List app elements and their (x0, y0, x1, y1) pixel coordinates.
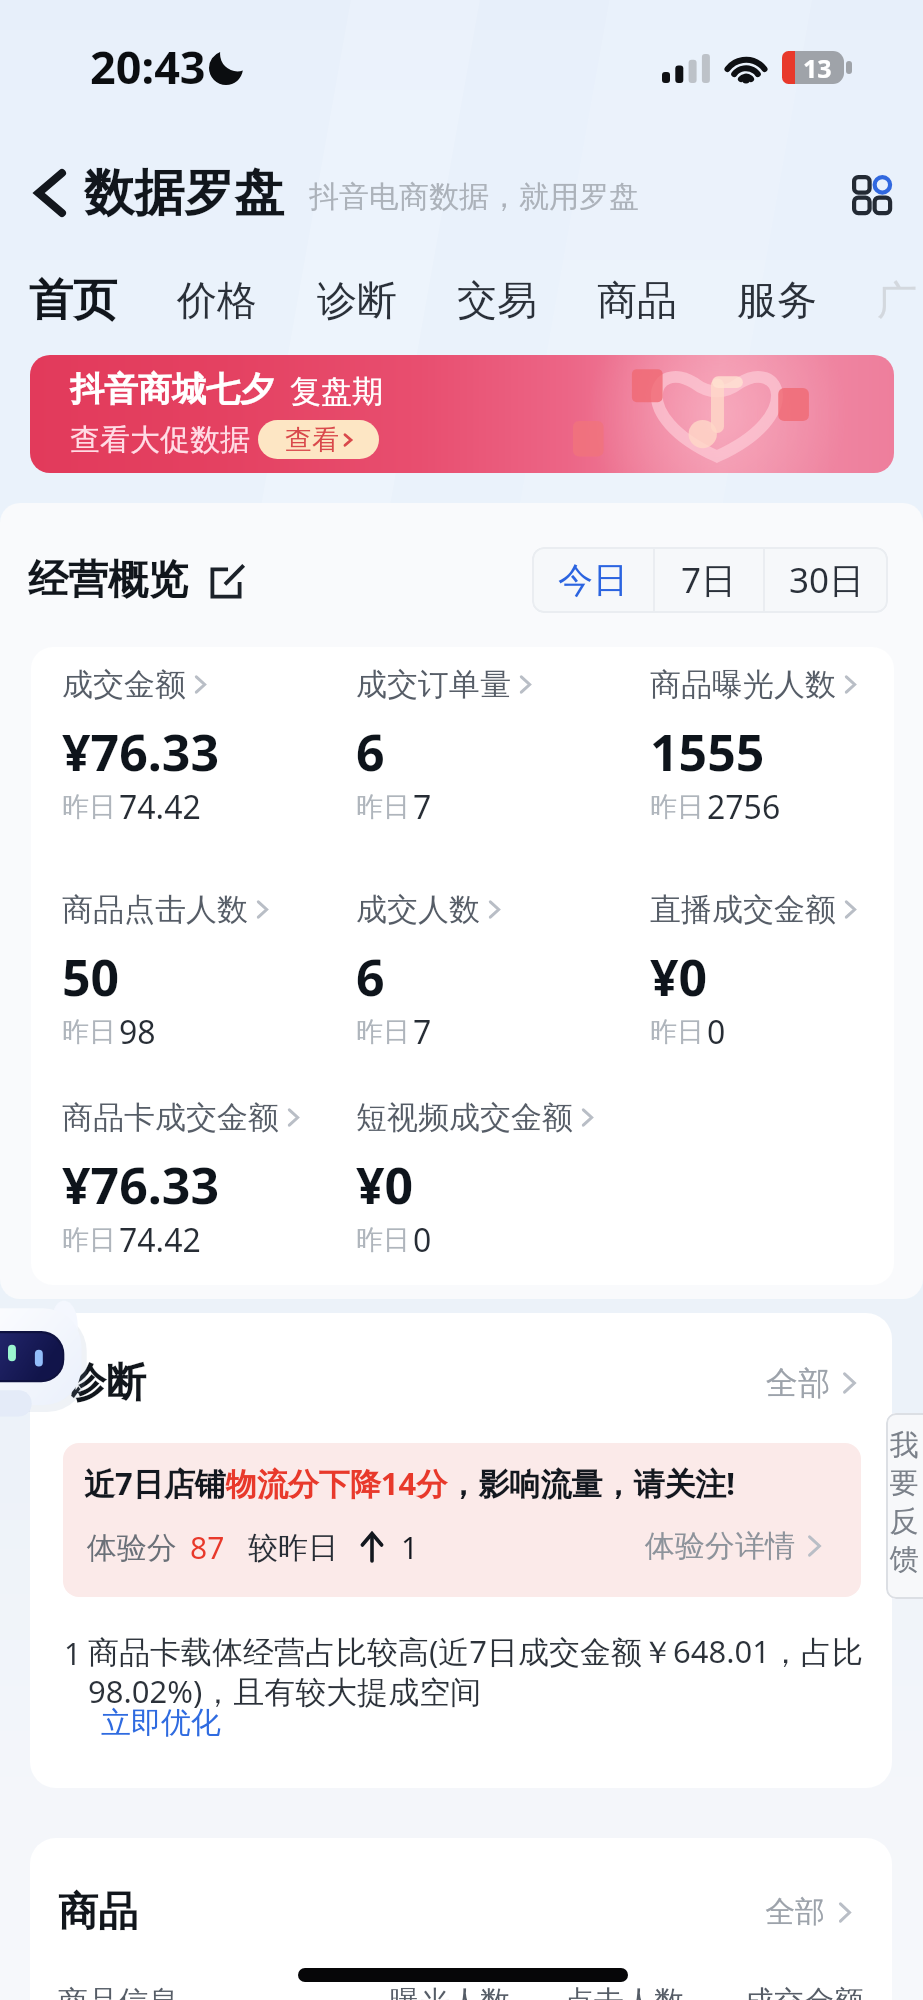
button[interactable]: 成交人数 (356, 890, 500, 929)
staticText: 今日 (558, 558, 628, 602)
staticText: ¥76.33 (62, 718, 220, 786)
staticText: 体验分 (87, 1529, 177, 1567)
staticText: 87 (190, 1527, 225, 1568)
staticText: 点击人数 (564, 1983, 684, 2000)
staticText: 1 (64, 1633, 82, 1674)
button[interactable]: Back (20, 158, 80, 228)
button[interactable]: 全部 (766, 1363, 856, 1403)
staticText: 成交订单量 (356, 665, 511, 704)
staticText: 我要反馈 (889, 1427, 919, 1578)
staticText: 成交金额 (62, 665, 186, 704)
staticText: 诊断 (66, 1357, 146, 1407)
staticText: 经营概览 (28, 554, 188, 604)
staticText: 查看 (285, 423, 339, 457)
staticText: 商品 (58, 1886, 138, 1936)
button[interactable]: 成交金额 (62, 665, 206, 704)
staticText: 7 (413, 1010, 432, 1054)
staticText: 昨日 (62, 1223, 116, 1257)
staticText: ¥0 (650, 943, 708, 1011)
button[interactable]: 诊断 (317, 275, 397, 325)
staticText: 1 (401, 1527, 419, 1568)
staticText: 全部 (766, 1363, 830, 1403)
button[interactable]: 服务 (737, 275, 817, 325)
staticText: 商品点击人数 (62, 890, 248, 929)
staticText: 商品曝光人数 (650, 665, 836, 704)
button[interactable]: 价格 (177, 275, 257, 325)
button[interactable]: 商品曝光人数 (650, 665, 856, 704)
staticText: 7日 (681, 556, 737, 604)
staticText: 商品 (597, 275, 677, 325)
button[interactable]: 全部 (765, 1893, 851, 1931)
button[interactable]: 首页 (29, 273, 117, 328)
button[interactable]: 30日 (765, 547, 888, 613)
staticText: 0 (707, 1010, 726, 1054)
staticText: 6 (356, 718, 385, 786)
staticText: 昨日 (356, 1223, 410, 1257)
staticText: 6 (356, 943, 385, 1011)
staticText: 曝光人数 (390, 1983, 510, 2000)
staticText: 立即优化 (101, 1704, 221, 1742)
staticText: 74.42 (119, 785, 201, 829)
button[interactable]: 商品 (597, 275, 677, 325)
staticText: 价格 (177, 275, 257, 325)
staticText: 诊断 (317, 275, 397, 325)
button[interactable]: 立即优化 (101, 1704, 221, 1742)
staticText: 服务 (737, 275, 817, 325)
staticText: 查看大促数据 (70, 421, 250, 459)
button[interactable]: 成交订单量 (356, 665, 531, 704)
button[interactable]: 直播成交金额 (650, 890, 856, 929)
staticText: 2756 (707, 785, 781, 829)
staticText: 昨日 (62, 790, 116, 824)
staticText: ¥0 (356, 1151, 414, 1219)
staticText: 直播成交金额 (650, 890, 836, 929)
button[interactable]: 交易 (457, 275, 537, 325)
staticText: 98 (119, 1010, 156, 1054)
staticText: 体验分详情 (645, 1527, 795, 1565)
button[interactable]: 7日 (655, 547, 763, 613)
staticText: 成交金额 (744, 1983, 864, 2000)
button[interactable]: 今日 (532, 547, 653, 613)
staticText: 1555 (650, 718, 765, 786)
staticText: 昨日 (650, 790, 704, 824)
staticText: 复盘期 (290, 372, 383, 411)
button[interactable]: Apps grid (837, 160, 903, 226)
staticText: 抖音商城七夕 (70, 368, 274, 411)
staticText: 昨日 (62, 1015, 116, 1049)
button[interactable]: 体验分详情 (645, 1527, 821, 1565)
button[interactable]: 查看 (258, 420, 379, 459)
staticText: 7 (413, 785, 432, 829)
staticText: 30日 (789, 556, 865, 604)
button[interactable]: 抖音商城七夕 (30, 355, 894, 473)
staticText: 50 (62, 943, 120, 1011)
staticText: 交易 (457, 275, 537, 325)
staticText: 20:43 (90, 36, 206, 97)
button[interactable]: 商品点击人数 (62, 890, 268, 929)
staticText: ¥76.33 (62, 1151, 220, 1219)
staticText: 数据罗盘 (84, 162, 284, 225)
staticText: 全部 (765, 1893, 825, 1931)
staticText: 成交人数 (356, 890, 480, 929)
button[interactable]: Edit overview (200, 557, 252, 609)
staticText: 较昨日 (248, 1529, 338, 1567)
button[interactable]: 我要反馈 (886, 1413, 923, 1599)
staticText: 抖音电商数据，就用罗盘 (309, 178, 639, 216)
staticText: 首页 (29, 273, 117, 328)
staticText: 短视频成交金额 (356, 1098, 573, 1137)
staticText: 昨日 (356, 790, 410, 824)
staticText: 近7日店铺物流分下降14分，影响流量，请关注! (84, 1462, 735, 1504)
button[interactable]: 商品卡成交金额 (62, 1098, 299, 1137)
staticText: 商品卡载体经营占比较高(近7日成交金额￥648.01，占比98.02%)，且有较… (88, 1630, 888, 1712)
staticText: 74.42 (119, 1218, 201, 1262)
staticText: 0 (413, 1218, 432, 1262)
button[interactable]: 广 (877, 275, 917, 325)
staticText: 昨日 (356, 1015, 410, 1049)
staticText: 商品卡成交金额 (62, 1098, 279, 1137)
staticText: 商品信息 (58, 1983, 178, 2000)
staticText: 广 (877, 275, 917, 325)
staticText: 昨日 (650, 1015, 704, 1049)
button[interactable]: 短视频成交金额 (356, 1098, 593, 1137)
staticText: 13 (803, 51, 832, 84)
